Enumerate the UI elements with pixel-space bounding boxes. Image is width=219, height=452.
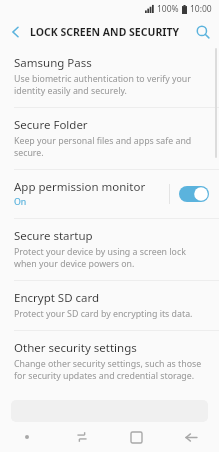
button[interactable]: Search <box>187 18 219 46</box>
button[interactable]: Secure Folder <box>0 108 219 169</box>
staticText: Keep your personal files and apps safe a… <box>14 135 203 159</box>
staticText: Protect your SD card by encrypting its d… <box>14 308 193 320</box>
button[interactable]: Samsung Pass <box>0 46 219 107</box>
staticText: Encrypt SD card <box>14 290 100 306</box>
button[interactable]: Secure startup <box>0 219 219 280</box>
staticText: Secure startup <box>14 228 93 244</box>
staticText: 100% <box>157 3 179 15</box>
button[interactable]: Home <box>109 422 164 452</box>
staticText: Protect your device by using a screen lo… <box>14 246 203 270</box>
button[interactable]: Other security settings <box>0 331 219 392</box>
button[interactable]: Encrypt SD card <box>0 281 219 330</box>
staticText: Other security settings <box>14 340 137 356</box>
button[interactable]: Recent apps <box>54 422 109 452</box>
staticText: Secure Folder <box>14 117 88 133</box>
button[interactable]: Keyboard hide <box>0 422 54 452</box>
staticText: Use biometric authentication to verify y… <box>14 73 203 97</box>
staticText: 10:00 <box>190 3 212 15</box>
button[interactable]: Back <box>0 18 30 46</box>
staticText: LOCK SCREEN AND SECURITY <box>30 25 180 39</box>
staticText: Change other security settings, such as … <box>14 358 203 382</box>
staticText: App permission monitor <box>14 179 146 195</box>
button[interactable]: App permission monitor <box>0 170 219 218</box>
button[interactable]: App permission monitor toggle <box>179 186 209 202</box>
staticText: Samsung Pass <box>14 55 92 71</box>
button[interactable]: Back <box>164 422 219 452</box>
staticText: On <box>14 196 27 208</box>
